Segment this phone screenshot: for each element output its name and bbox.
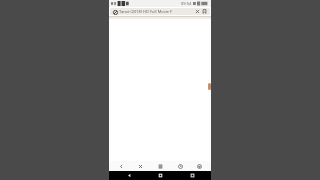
button[interactable]: History: [172, 161, 188, 171]
button[interactable]: Back: [117, 171, 141, 180]
button[interactable]: Site information, not secure: [110, 8, 210, 15]
button[interactable]: Stop: [132, 161, 148, 171]
button[interactable]: Home: [191, 161, 207, 171]
button[interactable]: Home: [148, 171, 172, 180]
button[interactable]: Recents: [180, 171, 204, 180]
staticText: Tanot (2018) HD Full Movie F: [119, 9, 193, 14]
button[interactable]: Site information, not secure: [112, 9, 118, 15]
staticText: 09:54: [181, 1, 192, 6]
button[interactable]: Stop loading: [194, 8, 201, 15]
button[interactable]: Back: [113, 161, 129, 171]
button[interactable]: Tabs: [152, 161, 168, 171]
button[interactable]: Bookmark: [201, 8, 208, 15]
